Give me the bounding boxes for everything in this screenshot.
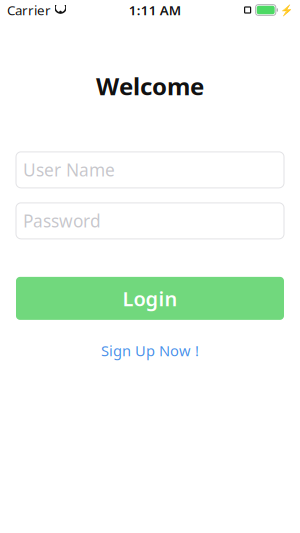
staticText: Password <box>23 209 101 232</box>
staticText: ⚡ <box>280 4 293 16</box>
button[interactable]: Login <box>16 277 284 320</box>
staticText: 1:11 AM <box>129 1 181 19</box>
staticText: Welcome <box>96 70 204 102</box>
staticText: Login <box>122 285 177 312</box>
staticText: User Name <box>23 158 115 181</box>
staticText: Carrier <box>7 1 51 19</box>
staticText: Sign Up Now ! <box>101 341 199 360</box>
button[interactable]: Sign Up Now ! <box>91 336 209 365</box>
